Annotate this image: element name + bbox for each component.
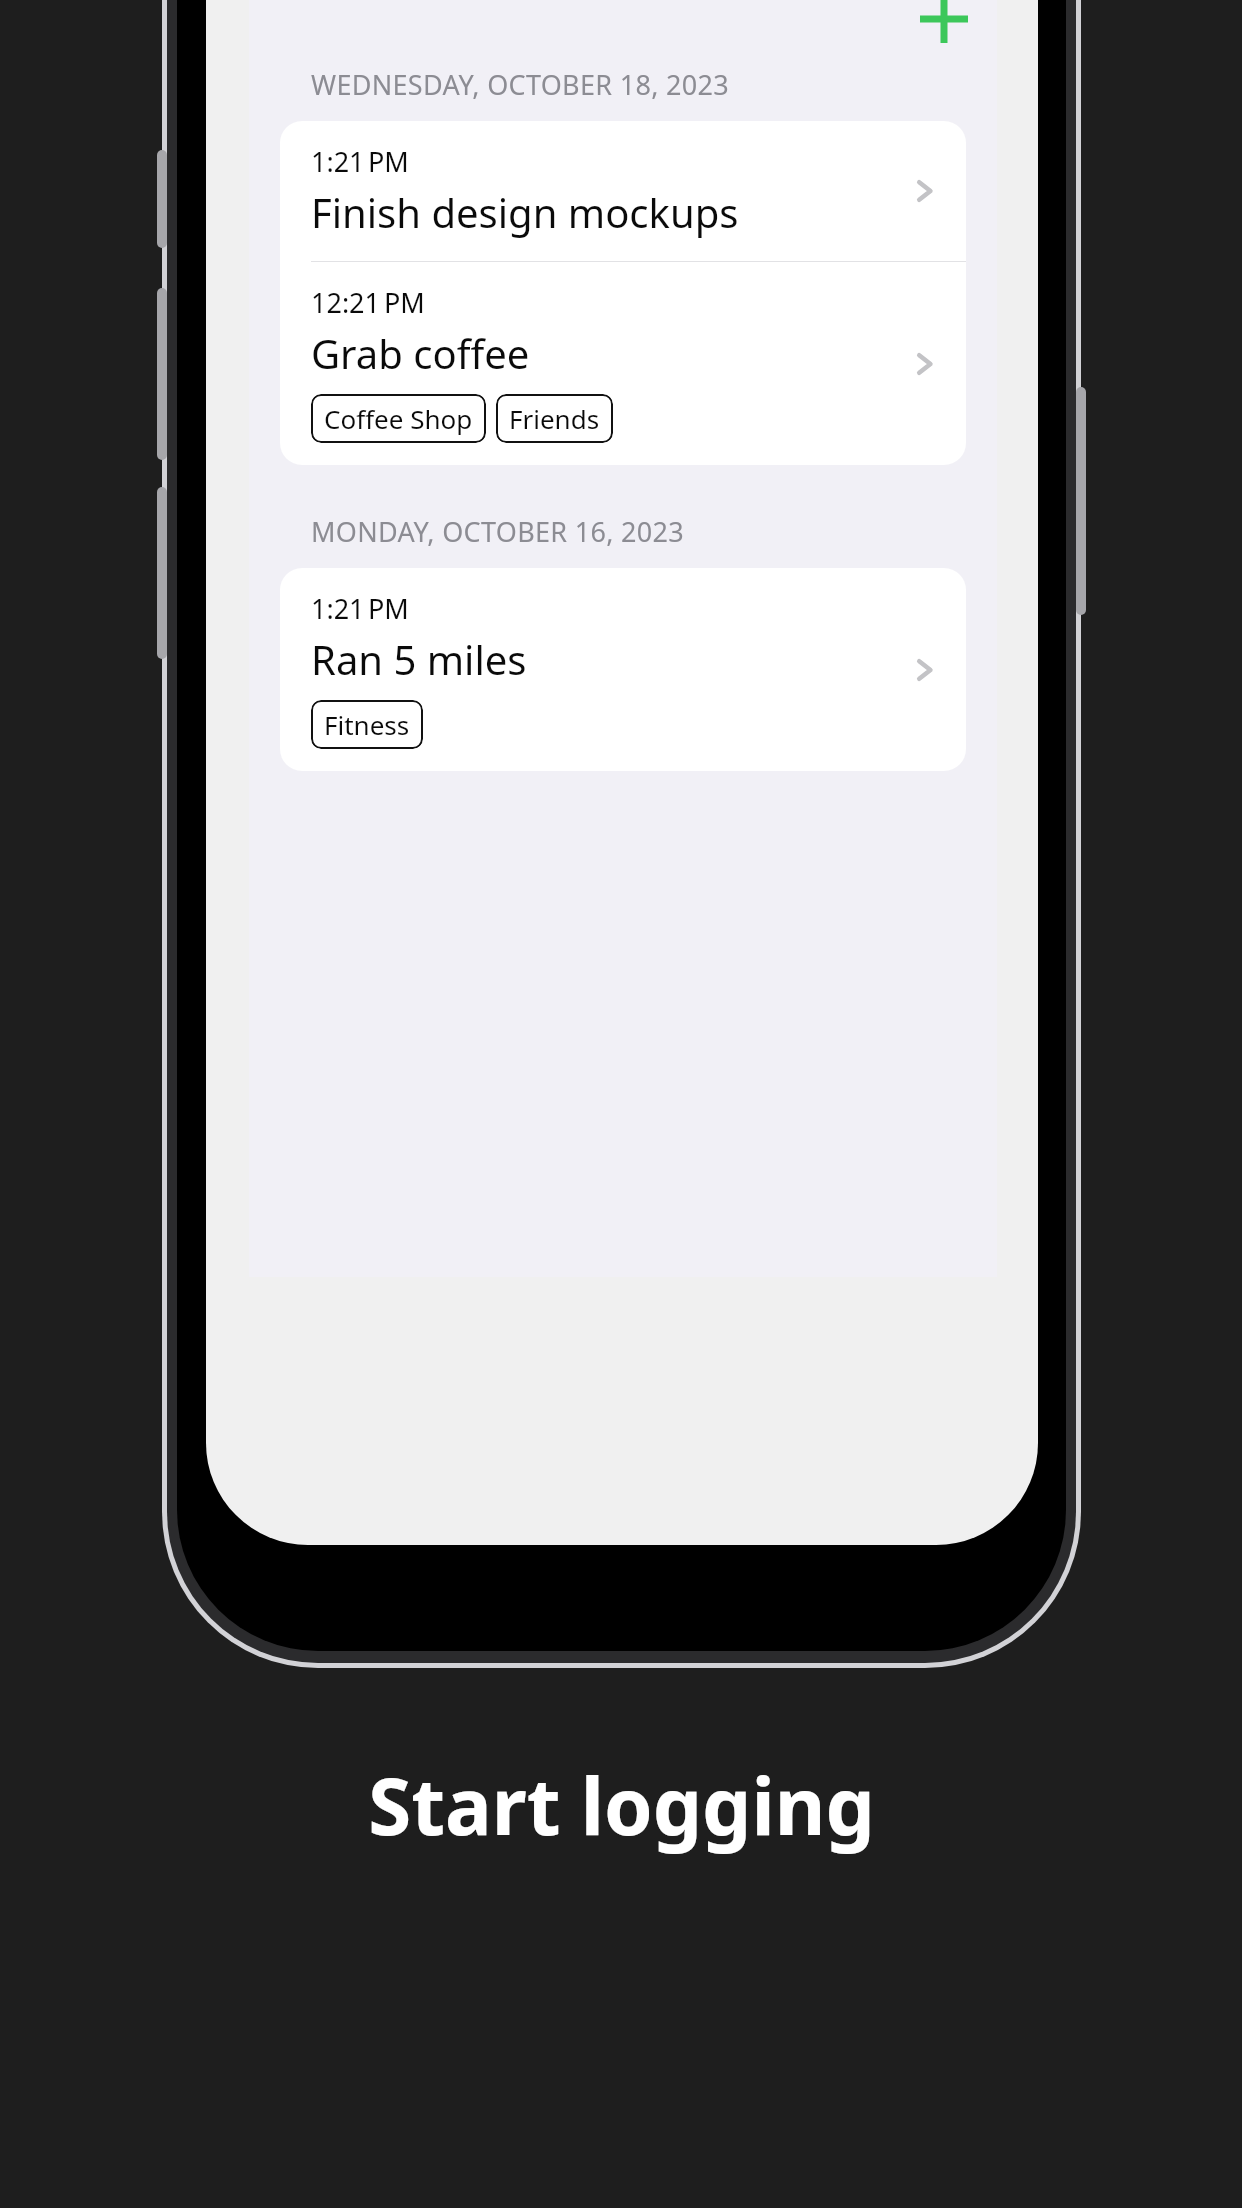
staticText: Start logging (368, 1752, 875, 1858)
button[interactable]: Add entry (901, 0, 987, 52)
staticText: WEDNESDAY, OCTOBER 18, 2023 (311, 66, 730, 103)
staticText: Fitness (324, 707, 410, 742)
staticText: PM (368, 143, 409, 180)
staticText: Ran 5 miles (311, 632, 527, 686)
staticText: MONDAY, OCTOBER 16, 2023 (311, 513, 685, 550)
button[interactable]: 1:21 (280, 568, 966, 771)
button[interactable]: Fitness (311, 700, 423, 749)
staticText: PM (384, 284, 425, 321)
button[interactable]: Coffee Shop (311, 394, 486, 443)
button[interactable]: 1:21 (280, 121, 966, 261)
button[interactable]: 12:21 (280, 262, 966, 465)
staticText: 12:21 (311, 284, 381, 321)
staticText: Friends (509, 401, 600, 436)
staticText: 1:21 (311, 143, 365, 180)
staticText: Coffee Shop (324, 401, 473, 436)
staticText: Finish design mockups (311, 185, 739, 239)
staticText: Grab coffee (311, 326, 530, 380)
staticText: 1:21 (311, 590, 365, 627)
button[interactable]: Friends (496, 394, 613, 443)
staticText: PM (368, 590, 409, 627)
